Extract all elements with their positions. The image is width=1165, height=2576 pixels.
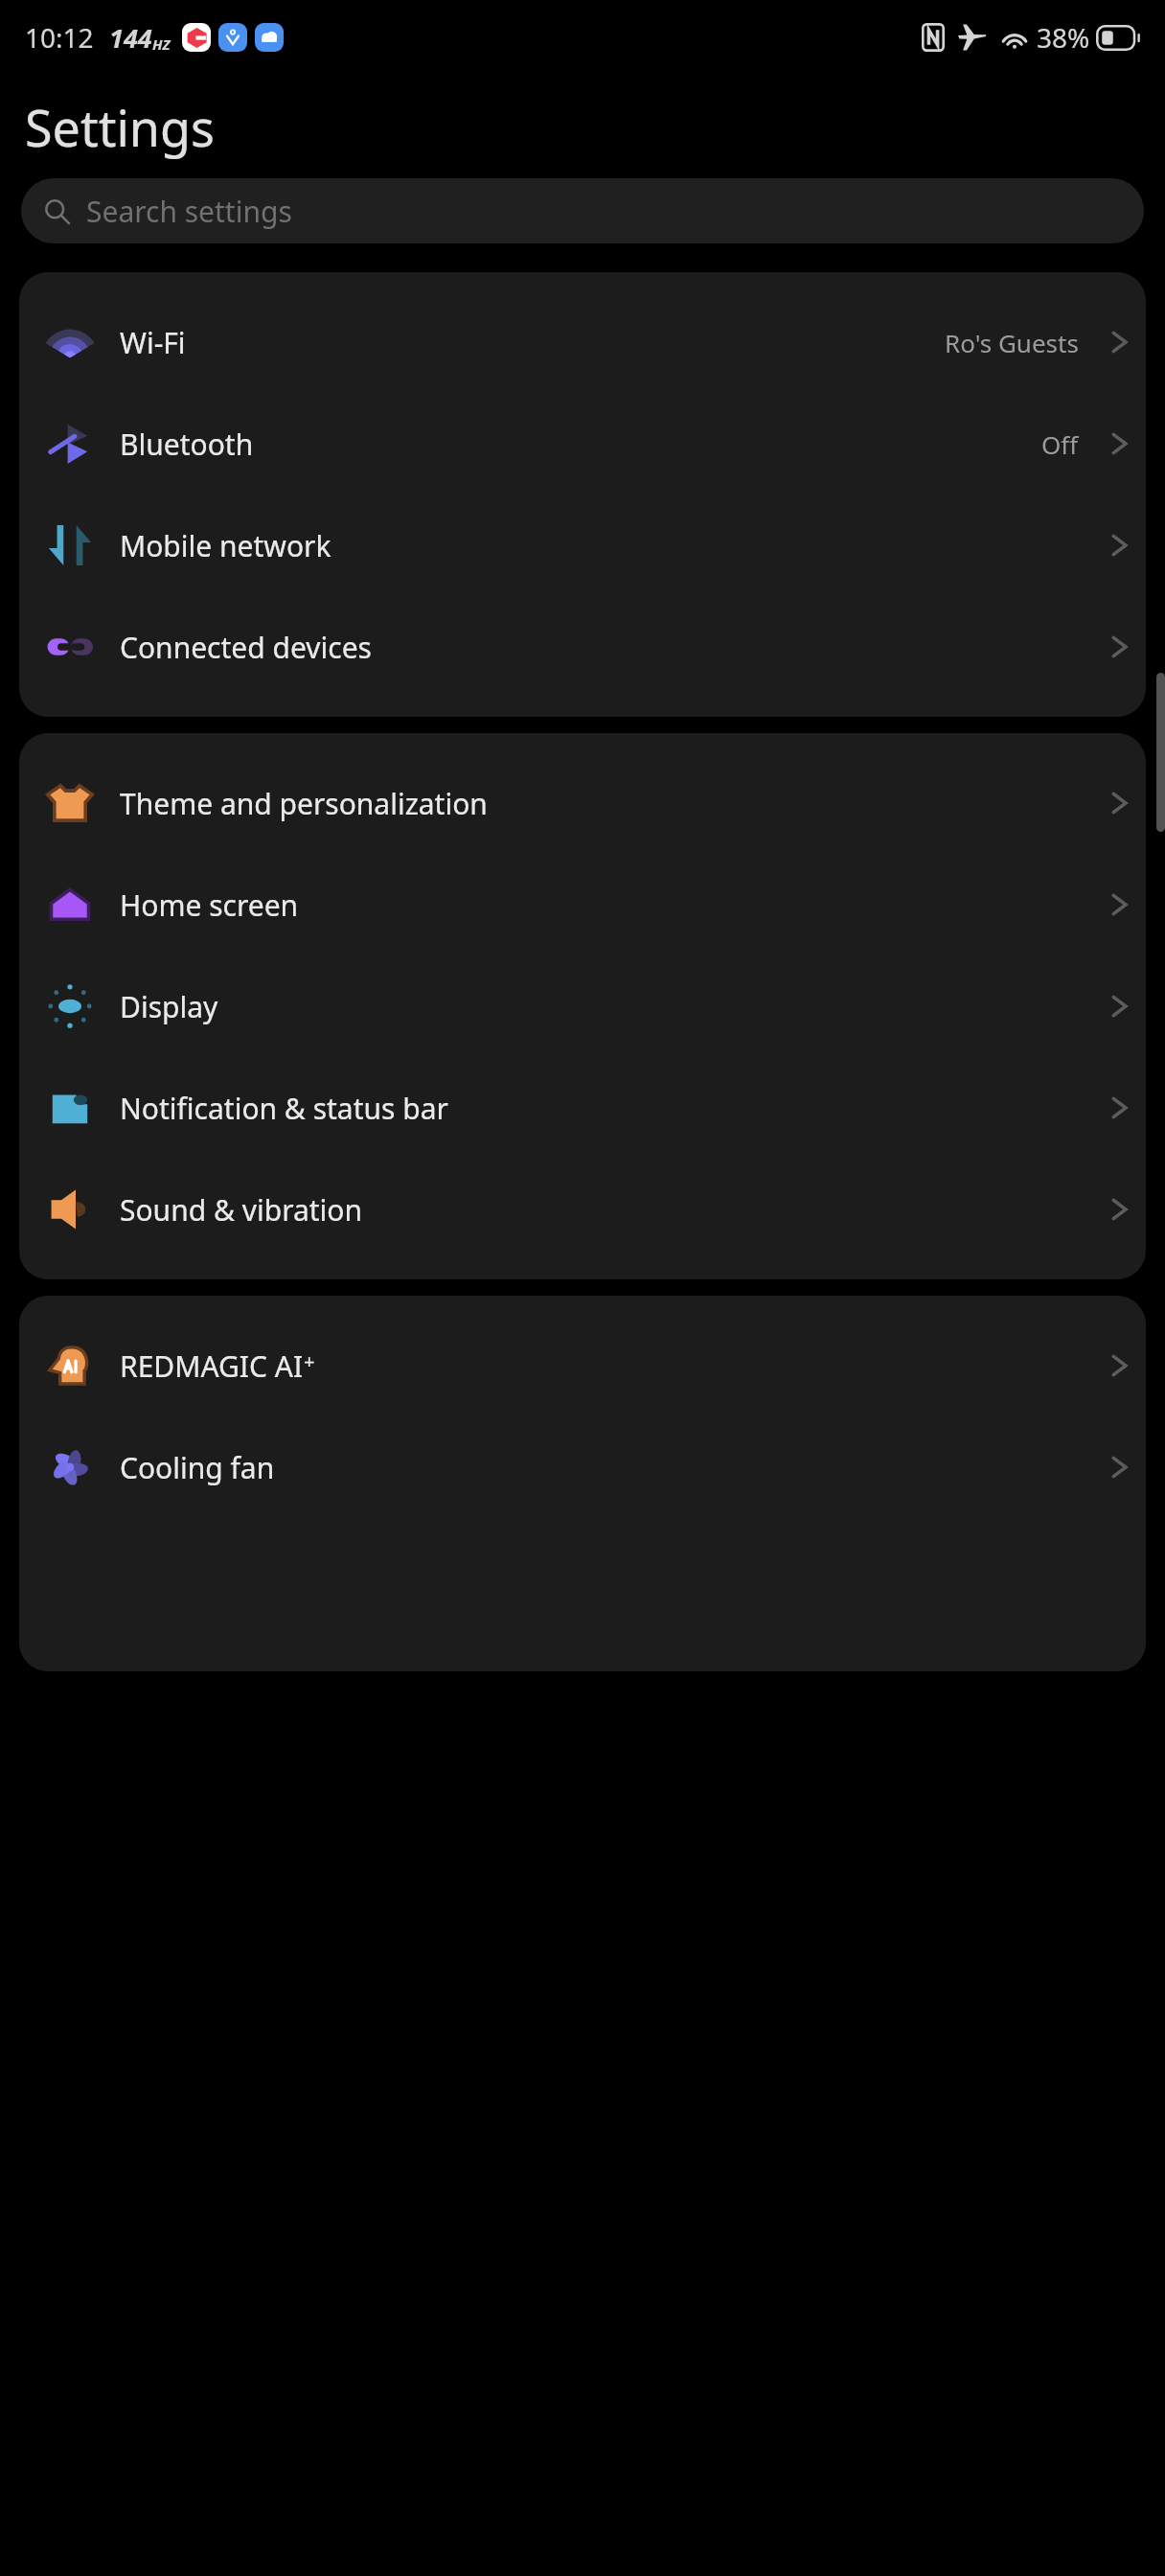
staticText: Mobile network [120, 526, 331, 565]
staticText: Cooling fan [120, 1448, 275, 1487]
button[interactable]: Home screen [19, 854, 1146, 955]
staticText: Wi-Fi [120, 323, 186, 362]
staticText: REDMAGIC AI [120, 1346, 304, 1386]
button[interactable]: Connected devices [19, 596, 1146, 698]
staticText: 38% [1037, 19, 1090, 56]
button[interactable]: Bluetooth [19, 393, 1146, 494]
other: Airplane mode [958, 23, 987, 52]
staticText: Off [1041, 427, 1079, 461]
staticText: 144 [109, 20, 152, 56]
button[interactable]: Notification & status bar [19, 1057, 1146, 1159]
other: NFC enabled [922, 23, 945, 52]
staticText: Home screen [120, 885, 299, 925]
staticText: Search settings [86, 192, 292, 231]
button[interactable]: Sound & vibration [19, 1159, 1146, 1260]
button[interactable]: Mobile network [19, 494, 1146, 596]
staticText: Notification & status bar [120, 1089, 448, 1128]
staticText: Connected devices [120, 628, 372, 667]
button[interactable]: Search settings [21, 178, 1144, 243]
button[interactable]: Theme and personalization [19, 752, 1146, 854]
staticText: Bluetooth [120, 425, 254, 464]
other: Battery 38 percent [1096, 25, 1142, 51]
staticText: Theme and personalization [120, 784, 488, 823]
button[interactable]: REDMAGIC AI [19, 1315, 1146, 1416]
staticText: + [304, 1348, 315, 1374]
staticText: Settings [25, 93, 215, 161]
button[interactable]: Cooling fan [19, 1416, 1146, 1518]
staticText: Ro's Guests [945, 326, 1079, 359]
staticText: 10:12 [25, 19, 94, 56]
staticText: HZ [152, 34, 171, 54]
other: Wi-Fi signal [1000, 26, 1029, 50]
staticText: Display [120, 987, 218, 1026]
button[interactable]: Wi-Fi [19, 291, 1146, 393]
staticText: Sound & vibration [120, 1190, 363, 1230]
button[interactable]: Display [19, 955, 1146, 1057]
